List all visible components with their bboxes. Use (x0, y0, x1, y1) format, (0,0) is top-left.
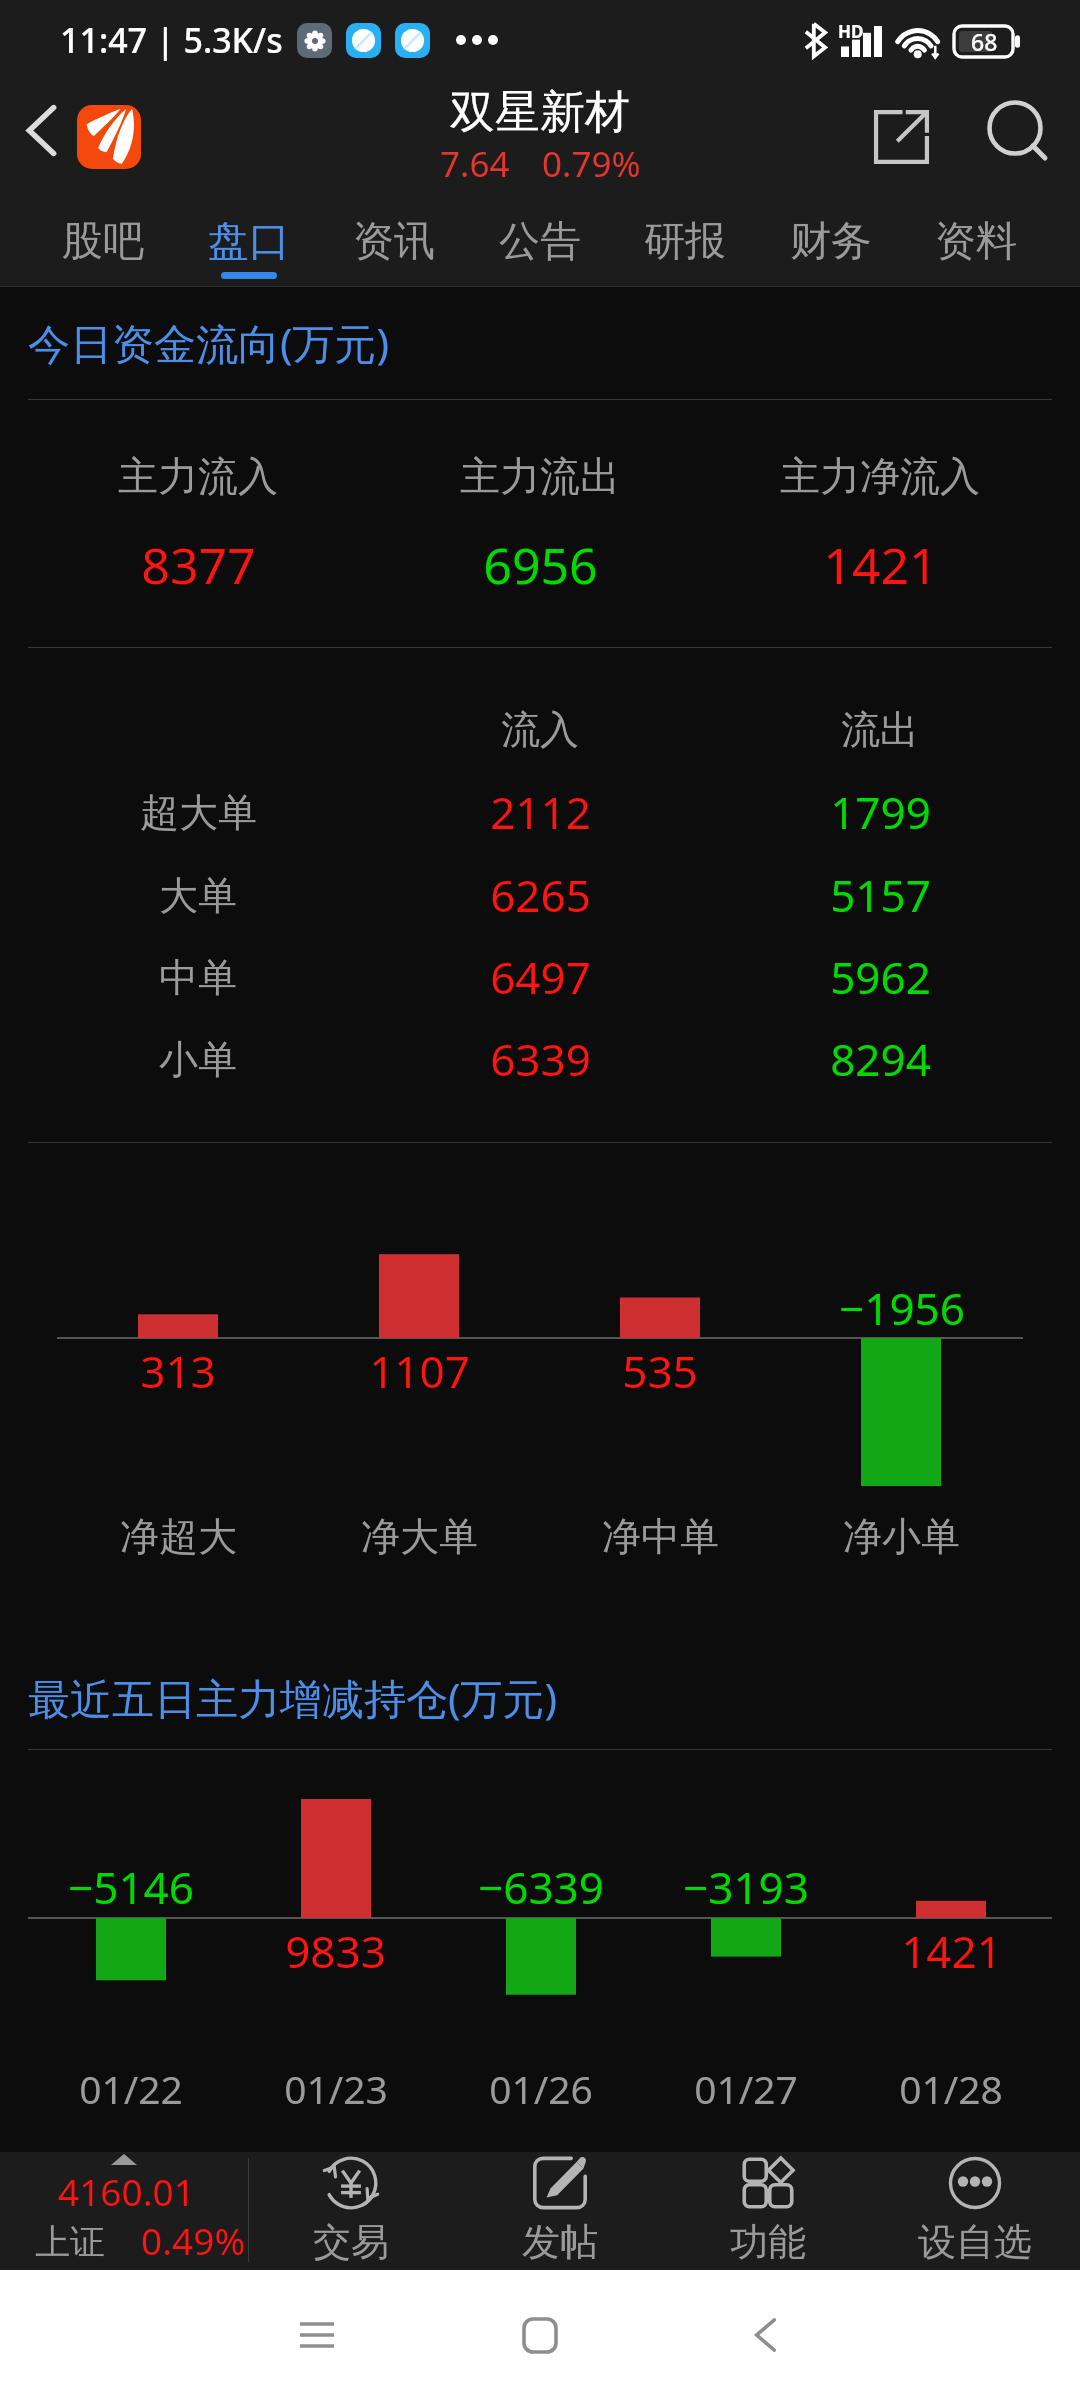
staticText: HD (838, 20, 864, 43)
staticText: 8294 (830, 1029, 931, 1089)
staticText: 2112 (490, 782, 591, 842)
staticText: 今日资金流向(万元) (28, 314, 390, 371)
staticText: 超大单 (140, 788, 257, 837)
staticText: 财务 (790, 216, 872, 268)
staticText: 5157 (830, 865, 931, 925)
staticText: 主力流出 (460, 451, 620, 501)
staticText: −1956 (839, 1278, 965, 1338)
staticText: 01/27 (694, 2062, 798, 2115)
staticText: 股吧 (62, 216, 144, 268)
staticText: 6956 (483, 531, 598, 599)
staticText: 5962 (830, 947, 931, 1007)
button[interactable]: 资料 (903, 193, 1049, 287)
button[interactable]: 公告 (467, 193, 613, 287)
staticText: 6497 (490, 947, 591, 1007)
staticText: 01/28 (899, 2062, 1003, 2115)
staticText: 最近五日主力增减持仓(万元) (28, 1669, 558, 1726)
staticText: 01/22 (79, 2062, 183, 2115)
staticText: 设自选 (918, 2218, 1032, 2266)
staticText: 0.79% (542, 140, 641, 188)
staticText: 0.49% (141, 2215, 246, 2261)
staticText: 资讯 (353, 216, 435, 268)
staticText: 1421 (823, 531, 938, 599)
staticText: 双星新材 (450, 84, 630, 141)
button[interactable]: 盘口 (176, 193, 322, 287)
staticText: 中单 (159, 953, 237, 1002)
button[interactable]: 功能 (664, 2152, 872, 2270)
staticText: 净大单 (361, 1512, 478, 1561)
staticText: 公告 (499, 216, 581, 268)
staticText: 交易 (313, 2218, 389, 2266)
staticText: 01/23 (284, 2062, 388, 2115)
staticText: 6265 (490, 865, 591, 925)
staticText: 9833 (285, 1921, 386, 1981)
staticText: −5146 (68, 1857, 194, 1917)
staticText: 6339 (490, 1029, 591, 1089)
staticText: 1107 (369, 1341, 470, 1401)
staticText: 主力流入 (118, 451, 278, 501)
button[interactable]: Share (847, 80, 955, 193)
button[interactable]: Search (960, 80, 1080, 193)
staticText: 净中单 (602, 1512, 719, 1561)
button[interactable]: 研报 (612, 193, 758, 287)
staticText: 535 (622, 1341, 698, 1401)
staticText: −6339 (478, 1857, 604, 1917)
staticText: 盘口 (208, 216, 290, 268)
staticText: 大单 (159, 871, 237, 920)
button[interactable]: 4160.01 (0, 2152, 248, 2270)
staticText: 净小单 (843, 1512, 960, 1561)
button[interactable]: 财务 (758, 193, 904, 287)
staticText: 发帖 (522, 2218, 598, 2266)
staticText: 流入 (501, 705, 579, 754)
staticText: 313 (140, 1341, 216, 1401)
button[interactable]: Back (710, 2280, 820, 2390)
button[interactable]: Recent apps (262, 2280, 372, 2390)
staticText: 主力净流入 (780, 451, 980, 501)
staticText: 11:47 | 5.3K/s (60, 17, 283, 63)
staticText: 功能 (730, 2218, 806, 2266)
staticText: 流出 (841, 705, 919, 754)
staticText: 1421 (901, 1921, 1002, 1981)
button[interactable]: 设自选 (871, 2152, 1079, 2270)
staticText: 01/26 (489, 2062, 593, 2115)
staticText: 68 (971, 26, 998, 57)
staticText: 小单 (159, 1035, 237, 1084)
button[interactable]: App home (77, 105, 141, 169)
staticText: 1799 (830, 782, 931, 842)
staticText: 研报 (644, 216, 726, 268)
staticText: 净超大 (120, 1512, 237, 1561)
button[interactable]: 发帖 (456, 2152, 664, 2270)
button[interactable]: Home (485, 2280, 595, 2390)
staticText: 8377 (141, 531, 256, 599)
staticText: 7.64 (440, 140, 510, 188)
button[interactable]: 股吧 (30, 193, 176, 287)
staticText: −3193 (683, 1857, 809, 1917)
button[interactable]: Back (0, 80, 77, 193)
staticText: 4160.01 (58, 2166, 195, 2216)
staticText: 资料 (935, 216, 1017, 268)
button[interactable]: 交易 (247, 2152, 455, 2270)
staticText: 上证 (35, 2220, 105, 2264)
button[interactable]: 资讯 (321, 193, 467, 287)
